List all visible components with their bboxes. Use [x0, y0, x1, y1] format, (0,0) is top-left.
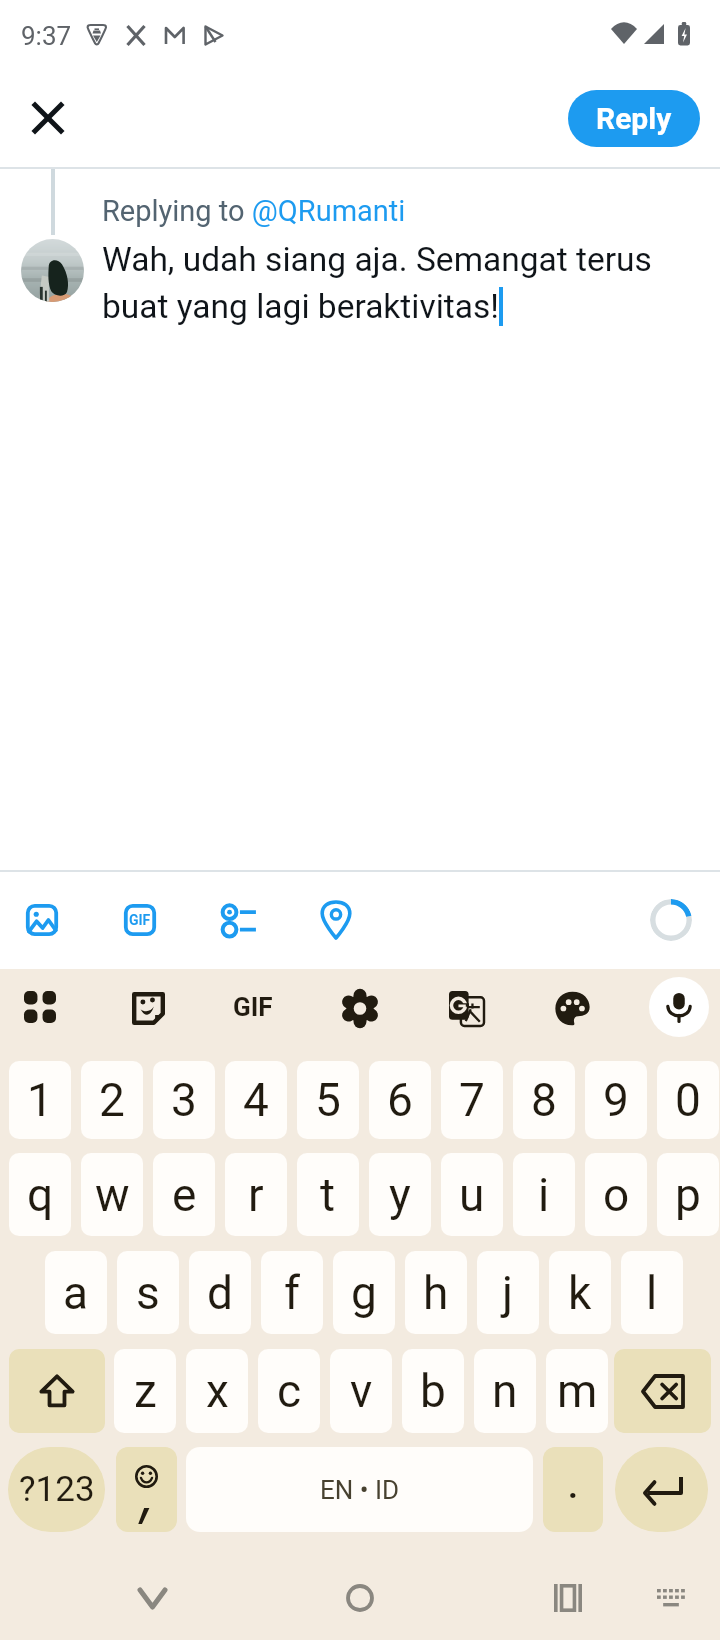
button[interactable]: c	[258, 1349, 320, 1433]
staticText: 1	[27, 1073, 53, 1127]
staticText: e	[172, 1168, 197, 1222]
button[interactable]: f	[261, 1251, 323, 1334]
button[interactable]: r	[225, 1153, 287, 1236]
staticText: a	[63, 1266, 89, 1320]
button[interactable]: d	[189, 1251, 251, 1334]
staticText: Wah, udah siang aja. Semangat terus buat…	[102, 240, 652, 326]
staticText: m	[557, 1364, 598, 1418]
button[interactable]: 6	[369, 1061, 431, 1139]
staticText: v	[350, 1364, 373, 1418]
button[interactable]: 7	[441, 1061, 503, 1139]
staticText: x	[206, 1364, 229, 1418]
button[interactable]: Back	[122, 1568, 182, 1628]
staticText: 6	[387, 1073, 413, 1127]
button[interactable]: z	[114, 1349, 176, 1433]
staticText: j	[502, 1266, 514, 1320]
staticText: c	[277, 1364, 302, 1418]
button[interactable]: s	[117, 1251, 179, 1334]
button[interactable]: Enter	[615, 1447, 708, 1532]
button[interactable]: Translate	[437, 979, 495, 1037]
button[interactable]: 5	[297, 1061, 359, 1139]
button[interactable]: i	[513, 1153, 575, 1236]
staticText: t	[320, 1168, 336, 1222]
button[interactable]: m	[546, 1349, 608, 1433]
button[interactable]: Shift	[9, 1349, 105, 1433]
button[interactable]: w	[81, 1153, 143, 1236]
button[interactable]: Stickers	[119, 979, 177, 1037]
staticText: h	[423, 1266, 449, 1320]
button[interactable]: Add location	[307, 891, 365, 949]
staticText: n	[492, 1364, 518, 1418]
button[interactable]: u	[441, 1153, 503, 1236]
staticText: k	[568, 1266, 592, 1320]
staticText: Reply	[596, 101, 672, 136]
staticText: 9	[603, 1073, 629, 1127]
staticText: z	[134, 1364, 157, 1418]
button[interactable]: Theme	[543, 979, 601, 1037]
button[interactable]: Hide keyboard	[641, 1568, 701, 1628]
button[interactable]: h	[405, 1251, 467, 1334]
button[interactable]: Space	[186, 1447, 533, 1532]
button[interactable]: q	[9, 1153, 71, 1236]
button[interactable]: y	[369, 1153, 431, 1236]
button[interactable]: 4	[225, 1061, 287, 1139]
staticText: 9:37	[21, 21, 72, 51]
staticText: s	[136, 1266, 160, 1320]
staticText: q	[27, 1168, 54, 1222]
button[interactable]: .	[543, 1447, 603, 1532]
staticText: 3	[171, 1073, 197, 1127]
staticText: GIF	[233, 992, 273, 1022]
button[interactable]: 2	[81, 1061, 143, 1139]
button[interactable]: Close	[12, 82, 84, 154]
staticText: y	[389, 1168, 411, 1222]
button[interactable]: l	[621, 1251, 683, 1334]
staticText: 8	[531, 1073, 557, 1127]
button[interactable]: x	[186, 1349, 248, 1433]
button[interactable]: Profile picture	[21, 239, 84, 302]
button[interactable]: j	[477, 1251, 539, 1334]
button[interactable]: Add poll	[209, 891, 267, 949]
button[interactable]: b	[402, 1349, 464, 1433]
button[interactable]: Voice input	[649, 977, 709, 1037]
staticText: b	[420, 1364, 446, 1418]
button[interactable]: 9	[585, 1061, 647, 1139]
staticText: GIF	[129, 912, 151, 928]
button[interactable]: Home	[330, 1568, 390, 1628]
staticText: 7	[459, 1073, 485, 1127]
button[interactable]: o	[585, 1153, 647, 1236]
button[interactable]: Reply	[568, 90, 700, 147]
staticText: f	[284, 1266, 300, 1320]
button[interactable]: a	[45, 1251, 107, 1334]
staticText: l	[646, 1266, 658, 1320]
staticText: g	[351, 1266, 377, 1320]
staticText: 2	[99, 1073, 125, 1127]
button[interactable]: Clipboard	[11, 978, 69, 1036]
button[interactable]: 0	[657, 1061, 719, 1139]
staticText: d	[207, 1266, 233, 1320]
staticText: .	[568, 1466, 578, 1506]
staticText: u	[459, 1168, 485, 1222]
button[interactable]: 3	[153, 1061, 215, 1139]
staticText: ?123	[19, 1469, 95, 1510]
button[interactable]: Settings	[331, 979, 389, 1037]
button[interactable]: Backspace	[614, 1349, 711, 1433]
button[interactable]: v	[330, 1349, 392, 1433]
button[interactable]: t	[297, 1153, 359, 1236]
button[interactable]: Add GIF	[111, 891, 169, 949]
button[interactable]: Emoji	[116, 1447, 177, 1532]
button[interactable]: Add photo	[13, 891, 71, 949]
button[interactable]: e	[153, 1153, 215, 1236]
button[interactable]: g	[333, 1251, 395, 1334]
button[interactable]: GIF	[223, 978, 283, 1036]
button[interactable]: 8	[513, 1061, 575, 1139]
button[interactable]: Recent apps	[538, 1568, 598, 1628]
button[interactable]: k	[549, 1251, 611, 1334]
button[interactable]: p	[657, 1153, 719, 1236]
button[interactable]: Character count	[650, 899, 692, 941]
button[interactable]: ?123	[8, 1447, 105, 1532]
staticText: i	[538, 1168, 550, 1222]
staticText: 5	[315, 1073, 341, 1127]
staticText: 0	[675, 1073, 701, 1127]
button[interactable]: 1	[9, 1061, 71, 1139]
button[interactable]: n	[474, 1349, 536, 1433]
